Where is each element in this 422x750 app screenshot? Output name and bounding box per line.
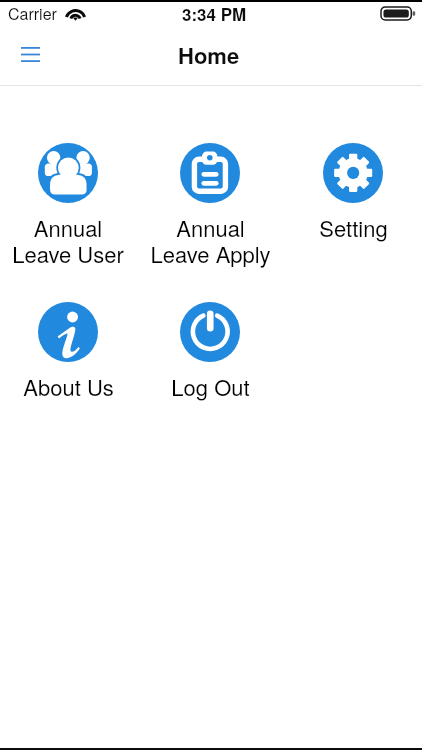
button[interactable]: Menu <box>8 40 53 72</box>
staticText: Carrier <box>8 2 57 25</box>
staticText: Annual Leave User <box>12 212 124 269</box>
staticText: Home <box>178 39 240 71</box>
staticText: About Us <box>23 371 114 403</box>
staticText: Log Out <box>171 371 250 403</box>
staticText: Annual Leave Apply <box>150 212 271 269</box>
button[interactable]: Log Out <box>135 302 285 403</box>
button[interactable]: Setting <box>278 143 422 244</box>
button[interactable]: Annual Leave User <box>0 143 143 269</box>
button[interactable]: About Us <box>0 302 143 403</box>
staticText: Setting <box>319 212 388 244</box>
staticText: 3:34 PM <box>182 2 247 26</box>
button[interactable]: Annual Leave Apply <box>135 143 285 269</box>
